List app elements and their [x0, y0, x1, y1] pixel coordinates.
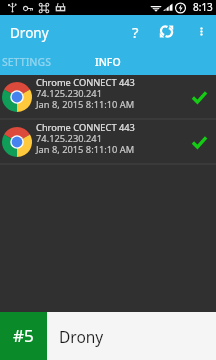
button[interactable]: Drony: [47, 312, 216, 360]
button[interactable]: SETTINGS: [0, 47, 65, 75]
button[interactable]: Chrome CONNECT 443: [0, 75, 216, 118]
staticText: #5: [13, 324, 34, 347]
button[interactable]: #5: [0, 312, 47, 360]
staticText: INFO: [95, 55, 121, 69]
staticText: 8:13: [193, 0, 213, 14]
button[interactable]: Refresh: [152, 15, 181, 47]
button[interactable]: INFO: [73, 47, 143, 75]
staticText: Drony: [10, 24, 49, 42]
staticText: 74.125.230.241: [36, 132, 102, 145]
button[interactable]: Help: [121, 15, 150, 47]
staticText: Jan 8, 2015 8:11:10 AM: [36, 143, 135, 156]
staticText: Drony: [59, 326, 104, 347]
staticText: Jan 8, 2015 8:11:10 AM: [36, 98, 135, 111]
staticText: 74.125.230.241: [36, 87, 102, 100]
staticText: SETTINGS: [2, 55, 51, 69]
staticText: ?: [132, 22, 139, 42]
button[interactable]: Chrome CONNECT 443: [0, 120, 216, 163]
button[interactable]: More options: [188, 15, 214, 47]
staticText: Chrome CONNECT 443: [36, 121, 135, 134]
staticText: Chrome CONNECT 443: [36, 76, 135, 89]
